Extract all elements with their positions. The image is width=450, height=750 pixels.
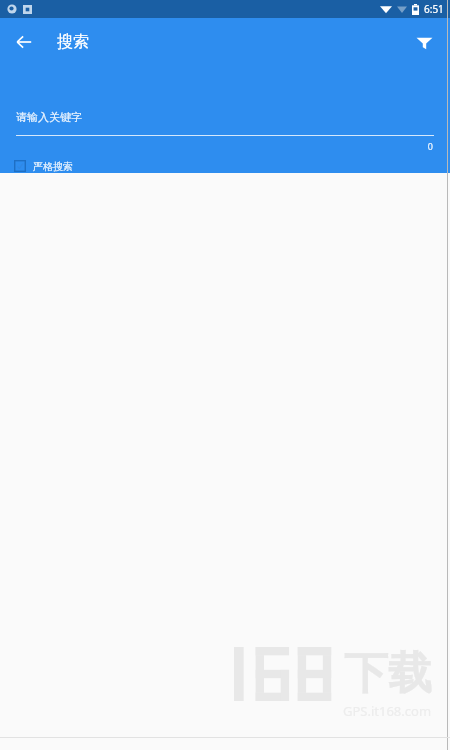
- staticText: GPS.it168.com: [343, 702, 432, 720]
- staticText: 严格搜索: [33, 160, 73, 173]
- staticText: 0: [427, 140, 433, 152]
- button[interactable]: 严格搜索: [14, 159, 73, 173]
- button[interactable]: 请输入关键字: [16, 110, 434, 136]
- button[interactable]: Filter: [404, 22, 444, 62]
- staticText: 请输入关键字: [16, 110, 82, 124]
- staticText: 下载: [344, 646, 432, 701]
- staticText: 搜索: [57, 32, 89, 52]
- staticText: 6:51: [424, 2, 444, 16]
- button[interactable]: Back: [6, 24, 42, 60]
